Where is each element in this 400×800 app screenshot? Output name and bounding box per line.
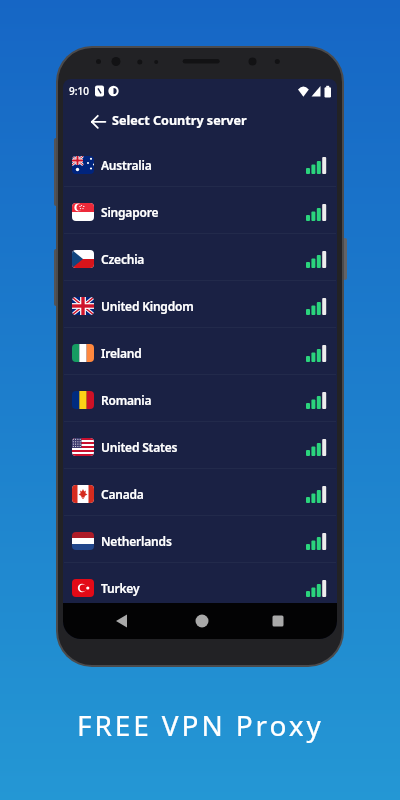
button[interactable] — [90, 103, 106, 140]
button[interactable]: Netherlands — [63, 516, 337, 563]
staticText: Czechia — [101, 251, 145, 267]
button[interactable]: Czechia — [63, 234, 337, 281]
button[interactable]: United Kingdom — [63, 281, 337, 328]
button[interactable]: Ireland — [63, 328, 337, 375]
staticText: Turkey — [101, 580, 140, 596]
staticText: FREE VPN Proxy — [77, 706, 324, 744]
staticText: Select Country server — [112, 112, 247, 129]
button[interactable]: Turkey — [63, 563, 337, 610]
staticText: Ireland — [101, 345, 142, 361]
staticText: 9:10 — [69, 84, 89, 98]
staticText: United Kingdom — [101, 298, 194, 314]
staticText: Romania — [101, 392, 152, 408]
button[interactable]: FREE VPN Proxy — [77, 706, 324, 744]
button[interactable]: Select Country server — [63, 103, 337, 140]
button[interactable]: United States — [63, 422, 337, 469]
button[interactable]: Singapore — [63, 187, 337, 234]
button[interactable] — [246, 603, 337, 639]
staticText: United States — [101, 439, 178, 455]
button[interactable] — [155, 603, 246, 639]
button[interactable]: Romania — [63, 375, 337, 422]
staticText: Singapore — [101, 204, 159, 220]
staticText: Canada — [101, 486, 144, 502]
button[interactable]: Australia — [63, 140, 337, 187]
button[interactable]: Canada — [63, 469, 337, 516]
staticText: Netherlands — [101, 533, 172, 549]
staticText: Australia — [101, 157, 152, 173]
button[interactable] — [63, 603, 155, 639]
